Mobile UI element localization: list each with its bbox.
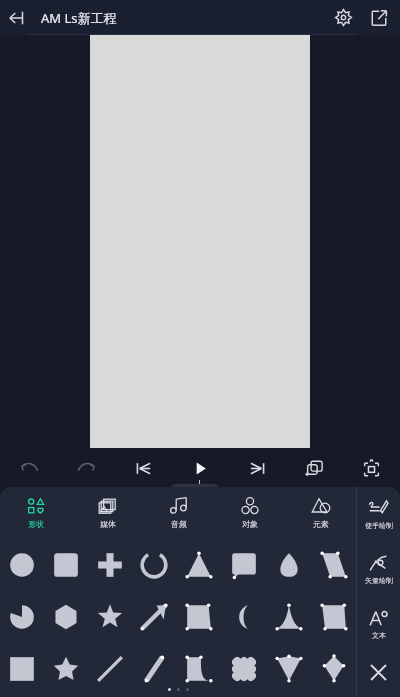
button[interactable]: Fit [343,448,400,488]
button[interactable]: 音频 [143,487,214,537]
button[interactable]: Shape 3 [88,539,132,591]
button[interactable]: Shape 17 [0,643,44,695]
button[interactable]: Shape 8 [311,539,356,591]
staticText: AM Ls新工程 [41,9,117,27]
staticText: 媒体 [100,519,116,529]
button[interactable]: Shape 18 [44,643,88,695]
button[interactable]: 媒体 [72,487,143,537]
button[interactable]: Previous [115,448,172,488]
button[interactable]: Shape 9 [0,591,44,643]
button[interactable]: Shape 1 [0,539,44,591]
button[interactable]: Shape 10 [44,591,88,643]
staticText: 矢量绘制 [365,576,393,585]
button[interactable]: Next [229,448,286,488]
button[interactable]: Shape 2 [44,539,88,591]
staticText: 00:00:00 [177,485,213,497]
button[interactable]: Shape 5 [176,539,221,591]
button[interactable]: Export [361,0,396,35]
button[interactable]: Shape 6 [221,539,266,591]
button[interactable]: Play [172,448,229,488]
staticText: 音频 [171,519,187,529]
button[interactable]: 元素 [285,487,356,537]
button[interactable]: 矢量绘制 [357,542,400,597]
staticText: 形状 [28,519,44,529]
button[interactable]: Shape 24 [311,643,356,695]
button[interactable]: Shape 20 [132,643,176,695]
button[interactable]: 对象 [214,487,285,537]
button[interactable]: Shape 21 [176,643,221,695]
button[interactable]: Duplicate [286,448,343,488]
button[interactable]: Shape 16 [311,591,356,643]
button[interactable]: 文本 [357,597,400,652]
button[interactable]: 使手绘制 [357,487,400,542]
staticText: 文本 [372,631,386,640]
button[interactable]: Shape 22 [221,643,266,695]
button[interactable]: Back [0,0,35,35]
staticText: 对象 [242,519,258,529]
button[interactable]: Shape 23 [266,643,311,695]
button[interactable]: Close [357,652,400,692]
button[interactable]: Shape 11 [88,591,132,643]
button[interactable]: Redo [58,448,115,488]
button[interactable]: Settings [326,0,361,35]
button[interactable]: Undo [0,448,58,488]
button[interactable]: Shape 14 [221,591,266,643]
button[interactable]: Shape 19 [88,643,132,695]
staticText: 使手绘制 [365,521,393,530]
button[interactable]: Shape 15 [266,591,311,643]
button[interactable]: Shape 12 [132,591,176,643]
button[interactable]: Shape 13 [176,591,221,643]
staticText: 元素 [313,519,329,529]
button[interactable]: 形状 [0,487,72,537]
button[interactable]: Shape 4 [132,539,176,591]
button[interactable]: Shape 7 [266,539,311,591]
